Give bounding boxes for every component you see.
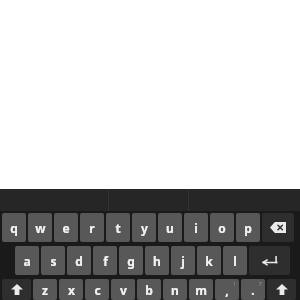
button[interactable]: i: [184, 213, 208, 242]
button[interactable]: Backspace: [262, 213, 294, 242]
staticText: a: [23, 253, 31, 269]
staticText: t: [115, 220, 121, 236]
button[interactable]: Shift right: [267, 279, 296, 300]
staticText: i: [194, 220, 198, 236]
staticText: b: [145, 282, 153, 298]
button[interactable]: Shift: [2, 279, 31, 300]
staticText: y: [141, 220, 148, 236]
staticText: u: [166, 220, 174, 236]
button[interactable]: y: [132, 213, 156, 242]
button[interactable]: f: [93, 246, 117, 275]
staticText: j: [181, 253, 185, 269]
staticText: ,: [225, 282, 229, 298]
button[interactable]: c: [85, 279, 109, 300]
staticText: m: [195, 282, 207, 298]
staticText: e: [62, 220, 70, 236]
staticText: l: [233, 253, 237, 269]
staticText: f: [103, 253, 108, 269]
button[interactable]: k: [197, 246, 221, 275]
staticText: !: [234, 280, 236, 288]
button[interactable]: g: [119, 246, 143, 275]
staticText: n: [171, 282, 179, 298]
staticText: c: [94, 282, 101, 298]
staticText: q: [10, 220, 18, 236]
button[interactable]: n: [163, 279, 187, 300]
staticText: s: [50, 253, 57, 269]
button[interactable]: u: [158, 213, 182, 242]
button[interactable]: e: [54, 213, 78, 242]
button[interactable]: j: [171, 246, 195, 275]
button[interactable]: p: [236, 213, 260, 242]
button[interactable]: d: [67, 246, 91, 275]
button[interactable]: z: [33, 279, 57, 300]
staticText: w: [35, 220, 46, 236]
staticText: o: [218, 220, 226, 236]
staticText: r: [89, 220, 95, 236]
staticText: x: [68, 282, 75, 298]
button[interactable]: a: [15, 246, 39, 275]
button[interactable]: l: [223, 246, 247, 275]
button[interactable]: t: [106, 213, 130, 242]
button[interactable]: m: [189, 279, 213, 300]
button[interactable]: x: [59, 279, 83, 300]
button[interactable]: o: [210, 213, 234, 242]
staticText: .: [251, 282, 255, 298]
staticText: g: [127, 253, 135, 269]
button[interactable]: s: [41, 246, 65, 275]
button[interactable]: q: [2, 213, 26, 242]
staticText: h: [153, 253, 161, 269]
staticText: ?: [259, 280, 262, 288]
button[interactable]: Enter: [249, 246, 290, 275]
staticText: z: [42, 282, 48, 298]
button[interactable]: .: [241, 279, 265, 300]
button[interactable]: r: [80, 213, 104, 242]
button[interactable]: w: [28, 213, 52, 242]
button[interactable]: b: [137, 279, 161, 300]
staticText: p: [244, 220, 252, 236]
staticText: d: [75, 253, 83, 269]
button[interactable]: ,: [215, 279, 239, 300]
staticText: k: [205, 253, 213, 269]
button[interactable]: h: [145, 246, 169, 275]
button[interactable]: v: [111, 279, 135, 300]
staticText: v: [120, 282, 127, 298]
